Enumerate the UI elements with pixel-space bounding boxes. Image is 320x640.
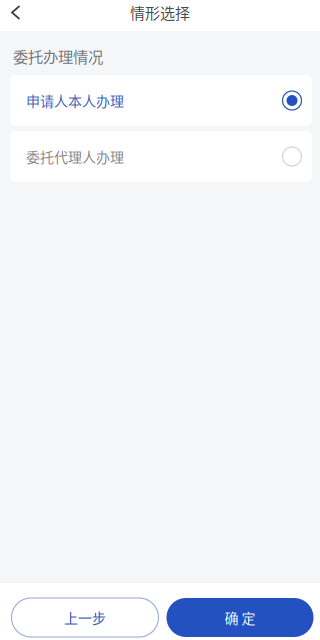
- staticText: 情形选择: [130, 2, 190, 23]
- staticText: 确 定: [224, 607, 255, 628]
- button[interactable]: 委托代理人办理: [10, 131, 312, 182]
- button[interactable]: 申请人本人办理: [10, 75, 312, 126]
- button[interactable]: 上一步: [11, 598, 158, 637]
- staticText: 上一步: [64, 607, 106, 628]
- staticText: 委托办理情况: [13, 45, 103, 67]
- staticText: 委托代理人办理: [26, 146, 124, 167]
- button[interactable]: 确 定: [166, 598, 313, 637]
- button[interactable]: 返回: [0, 0, 32, 31]
- staticText: 申请人本人办理: [26, 90, 124, 111]
